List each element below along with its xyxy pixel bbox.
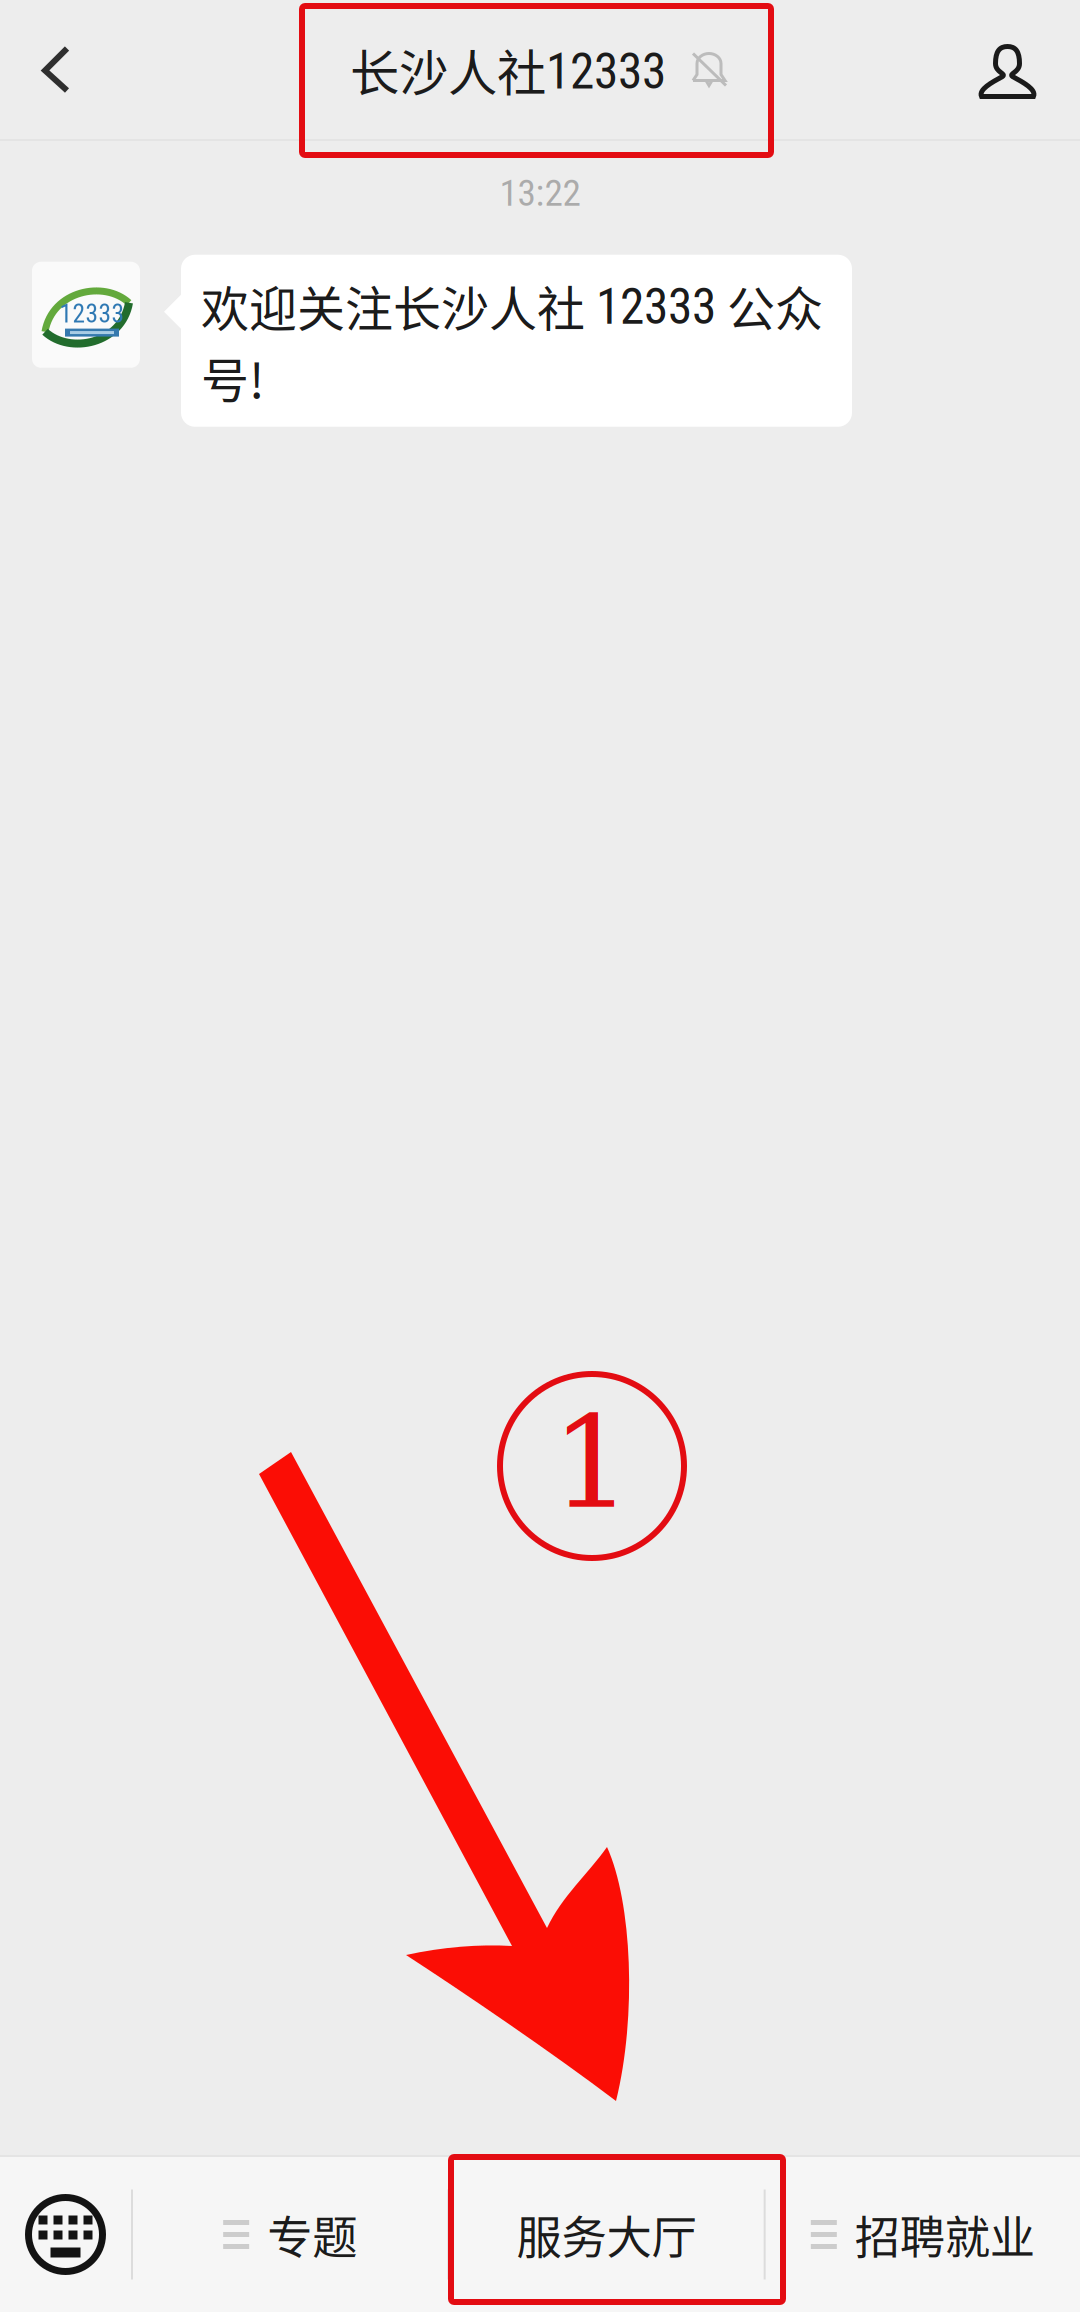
staticText: 欢迎关注长沙人社 12333 公众 (201, 271, 823, 340)
staticText: 12333 (59, 299, 124, 329)
staticText: 服务大厅 (516, 2202, 696, 2267)
staticText: 长沙人社12333 (350, 34, 666, 105)
staticText: 号! (201, 342, 265, 412)
button[interactable]: Keyboard (0, 2157, 131, 2312)
staticText: 1 (551, 1389, 632, 1537)
button[interactable]: Back (0, 0, 112, 139)
button[interactable]: 服务大厅 (449, 2157, 764, 2312)
staticText: 招聘就业 (855, 2202, 1035, 2267)
staticText: 专题 (267, 2202, 357, 2267)
button[interactable]: 招聘就业 (766, 2157, 1080, 2312)
button[interactable]: 专题 (133, 2157, 447, 2312)
button[interactable]: Account profile (935, 0, 1080, 139)
staticText: 13:22 (499, 171, 580, 215)
